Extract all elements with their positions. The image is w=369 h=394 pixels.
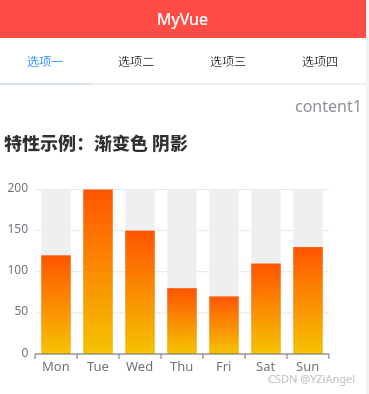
button[interactable]: MyVue (0, 0, 366, 38)
staticText: MyVue (157, 8, 209, 30)
staticText: 选项一 (27, 52, 64, 69)
staticText: 特性示例：渐变色 阴影 (4, 129, 189, 155)
staticText: 选项四 (302, 52, 339, 69)
staticText: content1 (295, 95, 362, 117)
button[interactable]: 选项三 (182, 38, 274, 83)
staticText: 选项三 (210, 52, 247, 69)
button[interactable]: 选项二 (91, 38, 182, 83)
button[interactable]: 选项四 (274, 38, 366, 83)
button[interactable]: 选项一 (0, 38, 91, 83)
staticText: 选项二 (118, 52, 155, 69)
